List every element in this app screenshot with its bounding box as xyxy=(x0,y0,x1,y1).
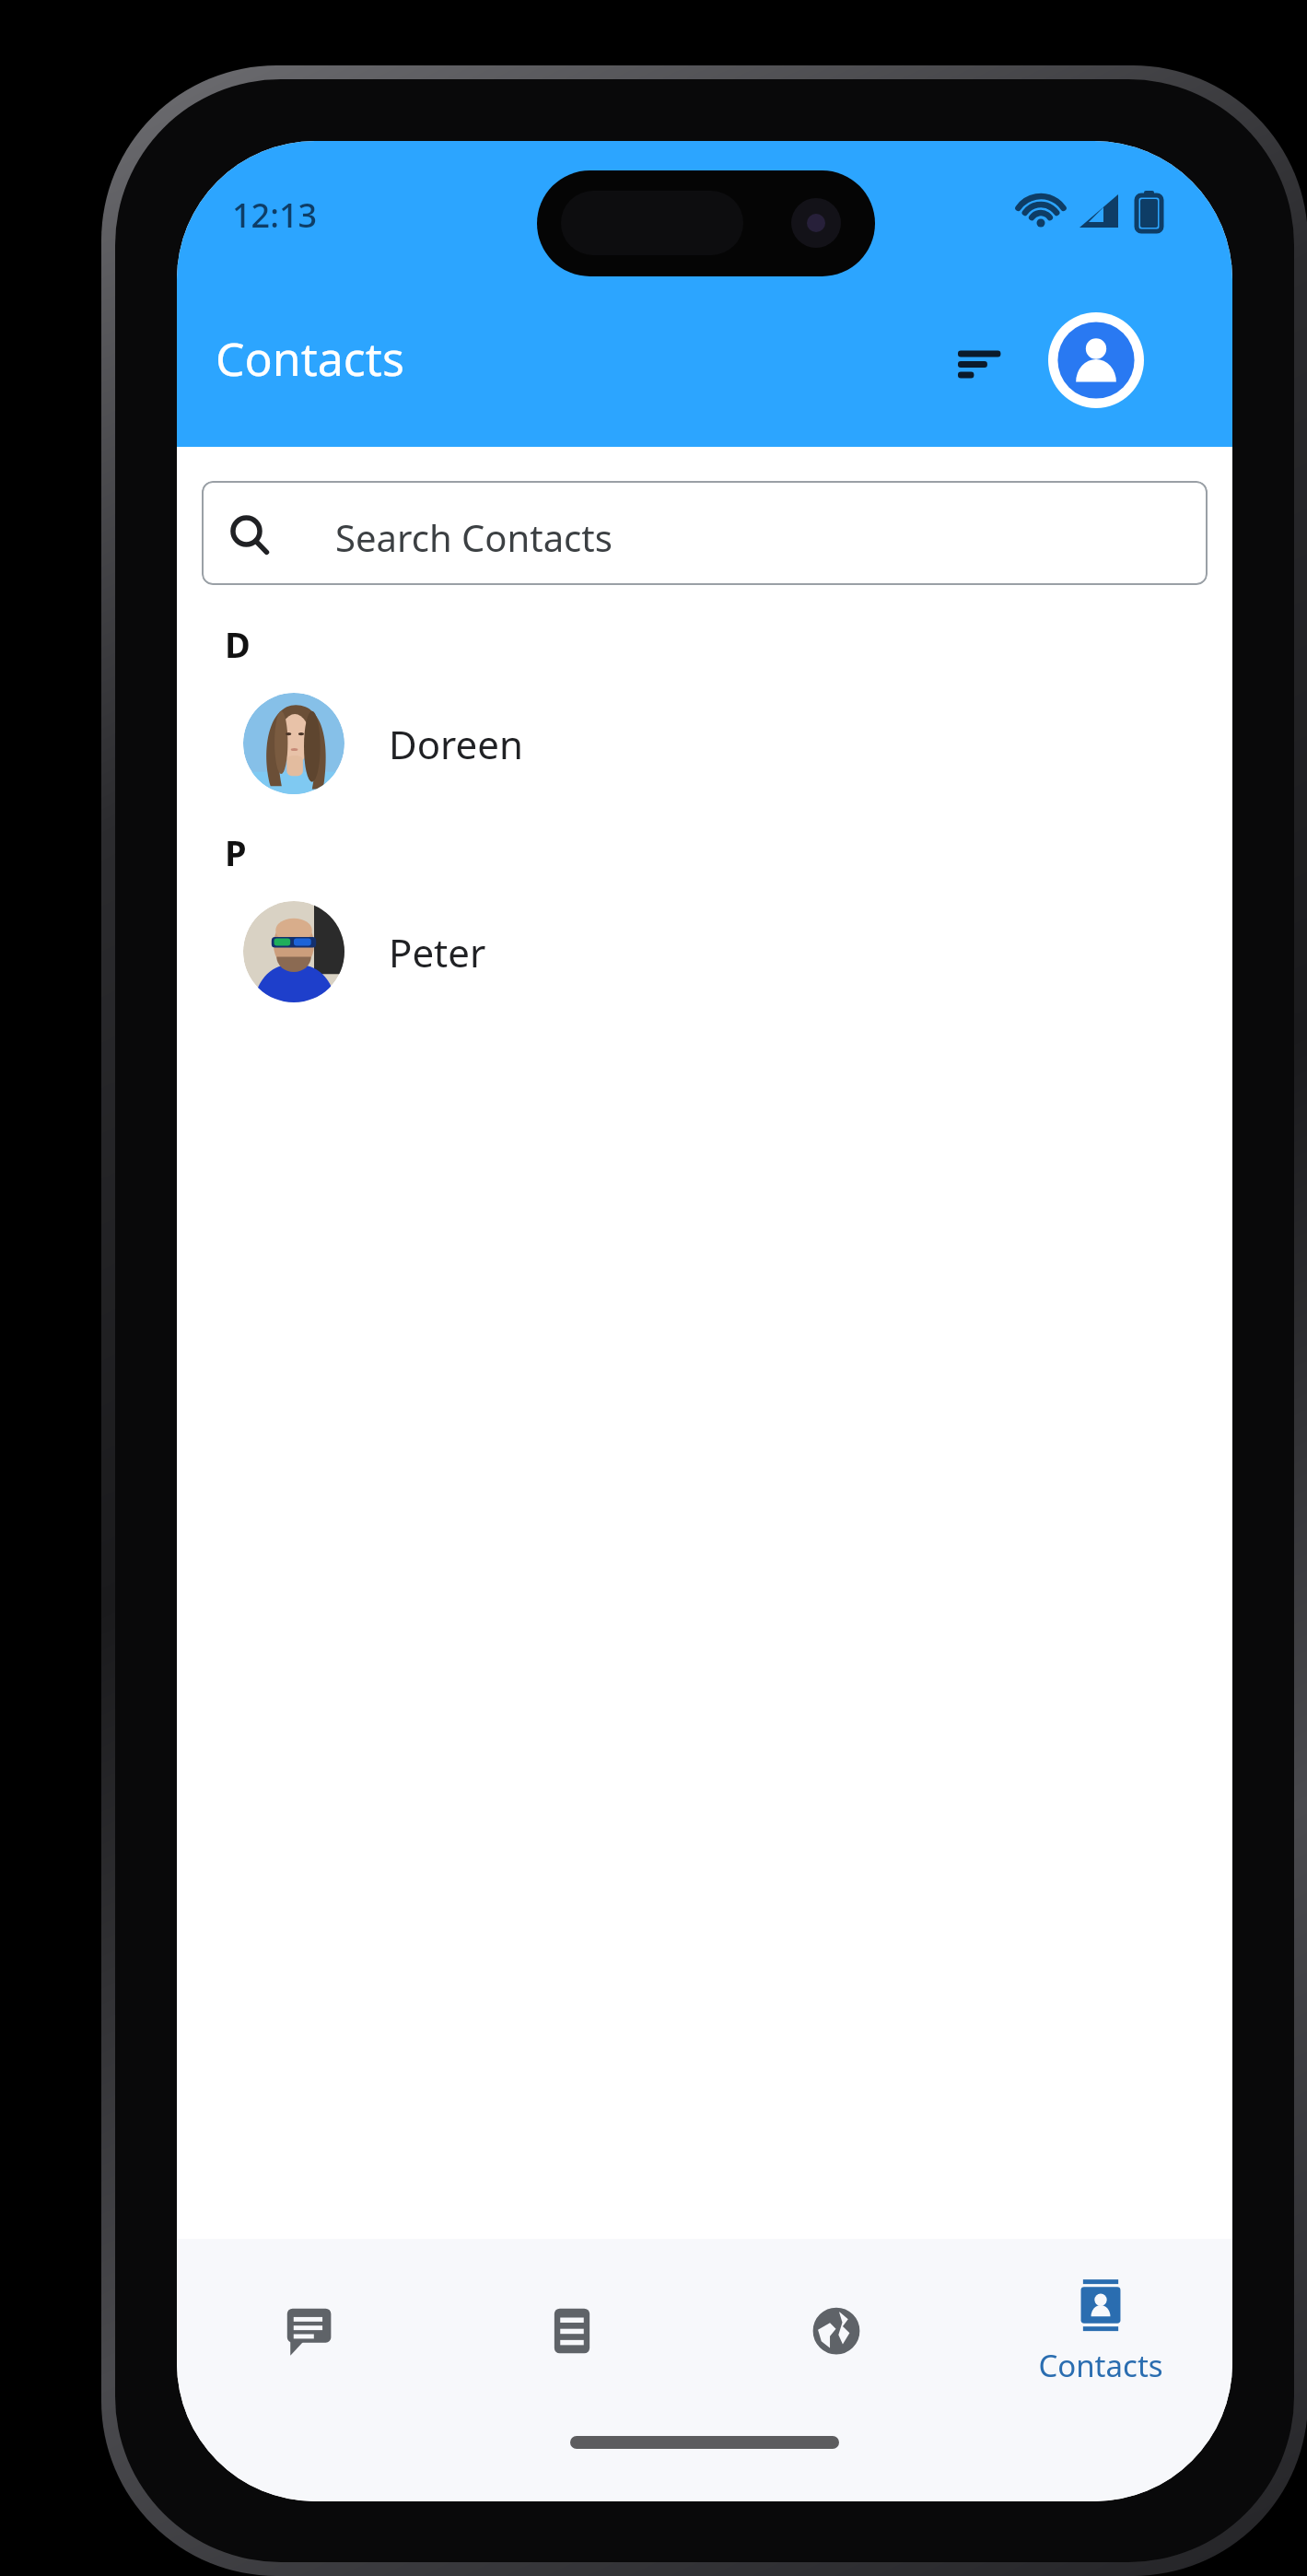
button[interactable]: Messages xyxy=(177,2239,440,2423)
button[interactable]: Peter xyxy=(177,887,1232,1016)
button[interactable]: Doreen xyxy=(177,679,1232,808)
staticText: D xyxy=(225,620,251,668)
button[interactable]: Feed xyxy=(440,2239,704,2423)
button[interactable]: Search Contacts xyxy=(202,481,1208,585)
button[interactable]: Contacts xyxy=(968,2239,1232,2423)
staticText: Search Contacts xyxy=(335,512,613,562)
staticText: Contacts xyxy=(216,327,404,390)
staticText: 12:13 xyxy=(232,193,318,238)
button[interactable]: Explore xyxy=(704,2239,968,2423)
button[interactable]: Sort xyxy=(938,320,1021,403)
staticText: P xyxy=(225,828,247,876)
button[interactable]: Account xyxy=(1043,307,1149,414)
staticText: Peter xyxy=(389,926,486,978)
staticText: Contacts xyxy=(1038,2345,1163,2386)
staticText: Doreen xyxy=(389,718,523,770)
